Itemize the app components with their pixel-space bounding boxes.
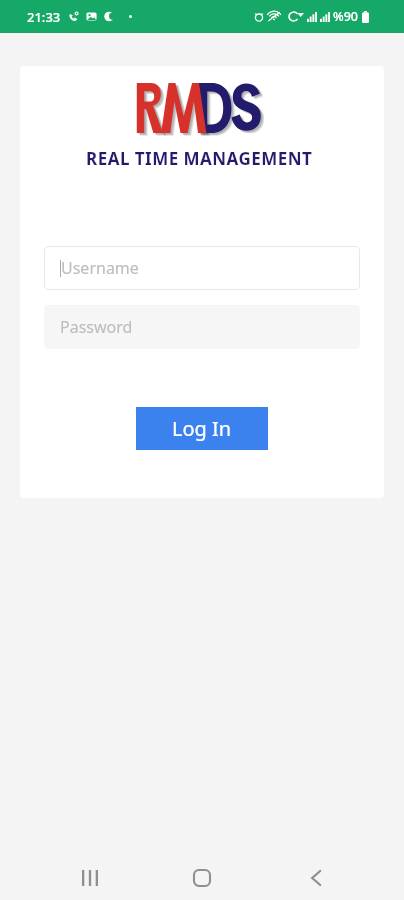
staticText: Log In: [172, 415, 232, 442]
button[interactable]: Back: [288, 853, 344, 900]
button[interactable]: Password: [44, 305, 360, 349]
button[interactable]: Log In: [136, 407, 268, 450]
staticText: Password: [60, 316, 133, 338]
staticText: REAL TIME MANAGEMENT: [86, 147, 313, 170]
staticText: 21:33: [27, 8, 61, 26]
button[interactable]: Username: [44, 246, 360, 290]
button[interactable]: Recent apps: [62, 853, 118, 900]
staticText: Username: [61, 257, 139, 279]
button[interactable]: Home: [174, 853, 230, 900]
staticText: %90: [333, 8, 358, 25]
